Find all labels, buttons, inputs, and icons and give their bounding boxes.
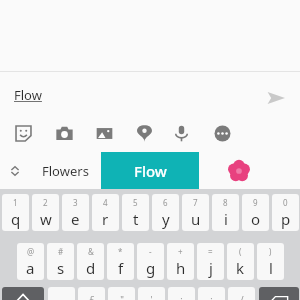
button[interactable]: * — [107, 243, 134, 280]
button[interactable]: & — [77, 243, 104, 280]
button[interactable]: Stickers — [8, 118, 38, 148]
staticText: 5 — [133, 197, 138, 208]
button[interactable]: " — [108, 287, 135, 300]
staticText: k — [236, 258, 245, 278]
staticText: + — [178, 246, 183, 257]
button[interactable]: 0 — [272, 194, 299, 231]
button[interactable]: + — [167, 243, 194, 280]
staticText: g — [146, 258, 156, 278]
staticText: / — [240, 293, 244, 300]
button[interactable]: - — [137, 243, 164, 280]
button[interactable]: 8 — [212, 194, 239, 231]
staticText: 4 — [103, 197, 108, 208]
staticText: u — [191, 209, 201, 229]
staticText: y — [162, 209, 170, 229]
button[interactable]: / — [228, 287, 255, 300]
staticText: o — [251, 209, 261, 229]
button[interactable]: 6 — [152, 194, 179, 231]
staticText: ( — [239, 246, 242, 257]
staticText: q — [11, 209, 21, 229]
staticText: h — [176, 258, 186, 278]
staticText: = — [208, 246, 213, 257]
button[interactable]: 9 — [242, 194, 269, 231]
staticText: l — [269, 258, 273, 278]
staticText: ' — [150, 293, 153, 300]
button[interactable]: # — [47, 243, 74, 280]
button[interactable]: Flowers — [30, 152, 101, 189]
staticText: t — [133, 209, 139, 229]
button[interactable]: Voice — [166, 118, 196, 148]
button[interactable]: ( — [227, 243, 254, 280]
button[interactable]: More — [207, 118, 237, 148]
staticText: 1 — [13, 197, 18, 208]
button[interactable]: 4 — [92, 194, 119, 231]
staticText: £ — [89, 293, 95, 300]
staticText: " — [120, 293, 124, 300]
staticText: - — [149, 246, 152, 257]
button[interactable]: ' — [138, 287, 165, 300]
button[interactable]: : — [168, 287, 195, 300]
staticText: r — [102, 209, 109, 229]
staticText: # — [58, 246, 64, 257]
staticText: i — [224, 209, 228, 229]
button[interactable]: 3 — [62, 194, 89, 231]
button[interactable]: Gallery — [89, 118, 119, 148]
staticText: 6 — [163, 197, 168, 208]
staticText: p — [281, 209, 291, 229]
staticText: d — [86, 258, 96, 278]
button[interactable]: Expand suggestions — [2, 152, 28, 189]
button[interactable]: Location — [129, 118, 159, 148]
button[interactable]: Backspace — [259, 287, 299, 300]
button[interactable]: Flow — [10, 80, 190, 110]
button[interactable]: = — [197, 243, 224, 280]
button[interactable]: £ — [78, 287, 105, 300]
staticText: j — [209, 258, 213, 278]
staticText: Flow — [14, 86, 42, 104]
staticText: w — [40, 209, 52, 229]
staticText: & — [88, 246, 94, 257]
button[interactable]: 7 — [182, 194, 209, 231]
staticText: ) — [269, 246, 272, 257]
staticText: f — [118, 258, 124, 278]
staticText: 0 — [283, 197, 288, 208]
button[interactable]: Camera — [49, 118, 79, 148]
staticText: 9 — [253, 197, 258, 208]
button[interactable]: 5 — [122, 194, 149, 231]
staticText: e — [71, 209, 80, 229]
staticText: Flowers — [42, 162, 89, 180]
staticText: a — [26, 258, 35, 278]
button[interactable]: ) — [257, 243, 284, 280]
staticText: 3 — [73, 197, 78, 208]
button[interactable]: Flow — [101, 152, 199, 189]
staticText: 2 — [43, 197, 48, 208]
button[interactable]: @ — [17, 243, 44, 280]
button[interactable]: Send — [262, 84, 290, 112]
button[interactable]: ; — [198, 287, 225, 300]
button[interactable]: Flower emoji — [219, 152, 259, 189]
button[interactable]: 2 — [32, 194, 59, 231]
staticText: * — [118, 246, 123, 257]
staticText: 7 — [193, 197, 198, 208]
staticText: @ — [27, 246, 35, 257]
button[interactable]: Shift — [2, 287, 44, 300]
staticText: ; — [210, 293, 213, 300]
staticText: 8 — [223, 197, 228, 208]
staticText: s — [57, 258, 65, 278]
button[interactable]: 1 — [2, 194, 29, 231]
staticText: Flow — [134, 161, 167, 181]
staticText: : — [180, 293, 183, 300]
